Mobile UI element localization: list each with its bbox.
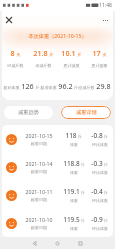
staticText: -0.3 <box>91 159 103 168</box>
staticText: 10.1 <box>61 48 76 58</box>
staticText: 称重日期 <box>31 141 47 146</box>
button[interactable]: 2021-10-10 <box>2 209 113 237</box>
button[interactable]: 减重趋势 <box>4 106 53 119</box>
staticText: 29.8 <box>96 81 111 91</box>
staticText: 17 <box>92 48 101 58</box>
staticText: 11:48 <box>99 2 112 9</box>
staticText: 称重日期 <box>31 197 47 202</box>
staticText: 天 <box>16 52 21 57</box>
staticText: 119.1 <box>63 187 80 196</box>
button[interactable]: Close <box>3 14 15 26</box>
staticText: -0.8 <box>91 131 103 140</box>
staticText: 斤 <box>104 218 108 223</box>
staticText: 斤 <box>35 85 40 90</box>
staticText: 已减斤数 <box>7 63 24 68</box>
staticText: 称重日期 <box>31 169 47 174</box>
staticText: 斤 <box>81 190 85 195</box>
staticText: 斤 <box>74 85 76 90</box>
staticText: 体重 <box>70 170 78 175</box>
staticText: 减重趋势 <box>18 109 39 116</box>
staticText: 环比体重 <box>92 170 108 175</box>
staticText: 标准体重 <box>40 85 57 90</box>
button[interactable]: Home <box>55 241 60 246</box>
staticText: 119.5 <box>63 215 80 224</box>
staticText: -0.9 <box>91 215 103 224</box>
staticText: 体重 <box>70 198 78 203</box>
staticText: 累计测量 <box>91 63 108 68</box>
staticText: 96.2 <box>58 81 73 91</box>
button[interactable]: More options <box>99 14 111 26</box>
staticText: 126 <box>21 81 34 91</box>
staticText: 2021-10-11 <box>25 188 53 195</box>
staticText: 环比体重 <box>92 226 108 231</box>
staticText: 称重日期 <box>31 225 47 230</box>
button[interactable]: Recent apps <box>78 241 83 246</box>
button[interactable]: 2021-10-14 <box>2 153 113 181</box>
staticText: 应减斤数 <box>78 85 95 90</box>
staticText: 初始体重 <box>3 85 20 90</box>
staticText: 2021-10-10 <box>25 216 53 223</box>
staticText: 斤 <box>104 190 108 195</box>
button[interactable]: 减重详情 <box>61 106 111 119</box>
button[interactable]: Back <box>32 241 37 246</box>
staticText: 体重 <box>70 226 78 231</box>
staticText: 8 <box>10 48 15 58</box>
staticText: 斤 <box>104 162 108 167</box>
staticText: 次 <box>102 52 107 57</box>
staticText: 累计减重 <box>63 63 80 68</box>
staticText: 斤 <box>49 52 54 57</box>
staticText: 未减斤数 <box>35 63 52 68</box>
staticText: 2021-10-15 <box>25 132 53 139</box>
staticText: -0.4 <box>91 187 103 196</box>
staticText: 减重详情 <box>76 109 97 116</box>
staticText: 斤 <box>81 162 85 167</box>
staticText: 2021-10-14 <box>25 160 53 167</box>
staticText: 体重 <box>70 142 78 147</box>
staticText: 环比体重 <box>92 198 108 203</box>
button[interactable]: 2021-10-15 <box>2 125 113 153</box>
button[interactable]: 8 <box>2 48 29 68</box>
staticText: 118.8 <box>63 159 80 168</box>
button[interactable]: 2021-10-11 <box>2 181 113 209</box>
staticText: 斤 <box>77 52 82 57</box>
staticText: 斤 <box>104 134 108 139</box>
staticText: 斤 <box>81 218 85 223</box>
button[interactable]: 10.1 <box>57 48 85 68</box>
staticText: 本次体重（2021-10-15） <box>28 32 87 39</box>
staticText: 21.8 <box>33 48 48 58</box>
button[interactable]: 21.8 <box>29 48 57 68</box>
staticText: 环比体重 <box>92 142 108 147</box>
staticText: 118 <box>65 131 77 140</box>
staticText: 斤 <box>78 134 82 139</box>
button[interactable]: 17 <box>85 48 113 68</box>
